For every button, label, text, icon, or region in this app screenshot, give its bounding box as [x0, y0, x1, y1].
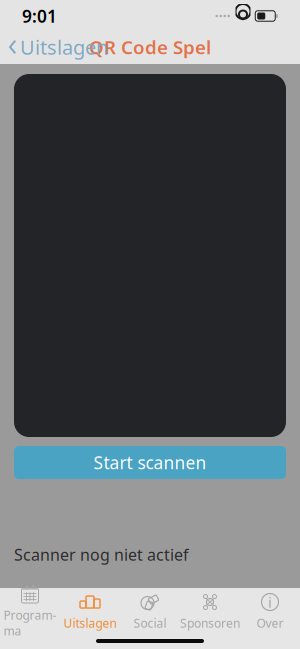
staticText: Scanner nog niet actief	[14, 544, 189, 565]
button[interactable]: Uitslagen	[60, 587, 120, 631]
button[interactable]: Sponsoren	[180, 587, 240, 631]
staticText: Over	[256, 615, 283, 631]
staticText: i	[268, 592, 272, 612]
staticText: Sponsoren	[180, 615, 240, 631]
button[interactable]: Start scannen	[14, 446, 286, 479]
button[interactable]: Uitslagen	[0, 28, 108, 66]
staticText: Uitslagen	[20, 34, 108, 60]
staticText: 9:01	[22, 4, 57, 27]
staticText: Uitslagen	[63, 615, 116, 631]
staticText: Programma	[3, 607, 56, 639]
staticText: Social	[133, 615, 166, 631]
button[interactable]: i	[240, 587, 300, 631]
button[interactable]: Social	[120, 587, 180, 631]
staticText: Start scannen	[93, 451, 206, 474]
staticText: QR Code Spel	[89, 35, 211, 59]
button[interactable]: Programma	[0, 579, 60, 639]
